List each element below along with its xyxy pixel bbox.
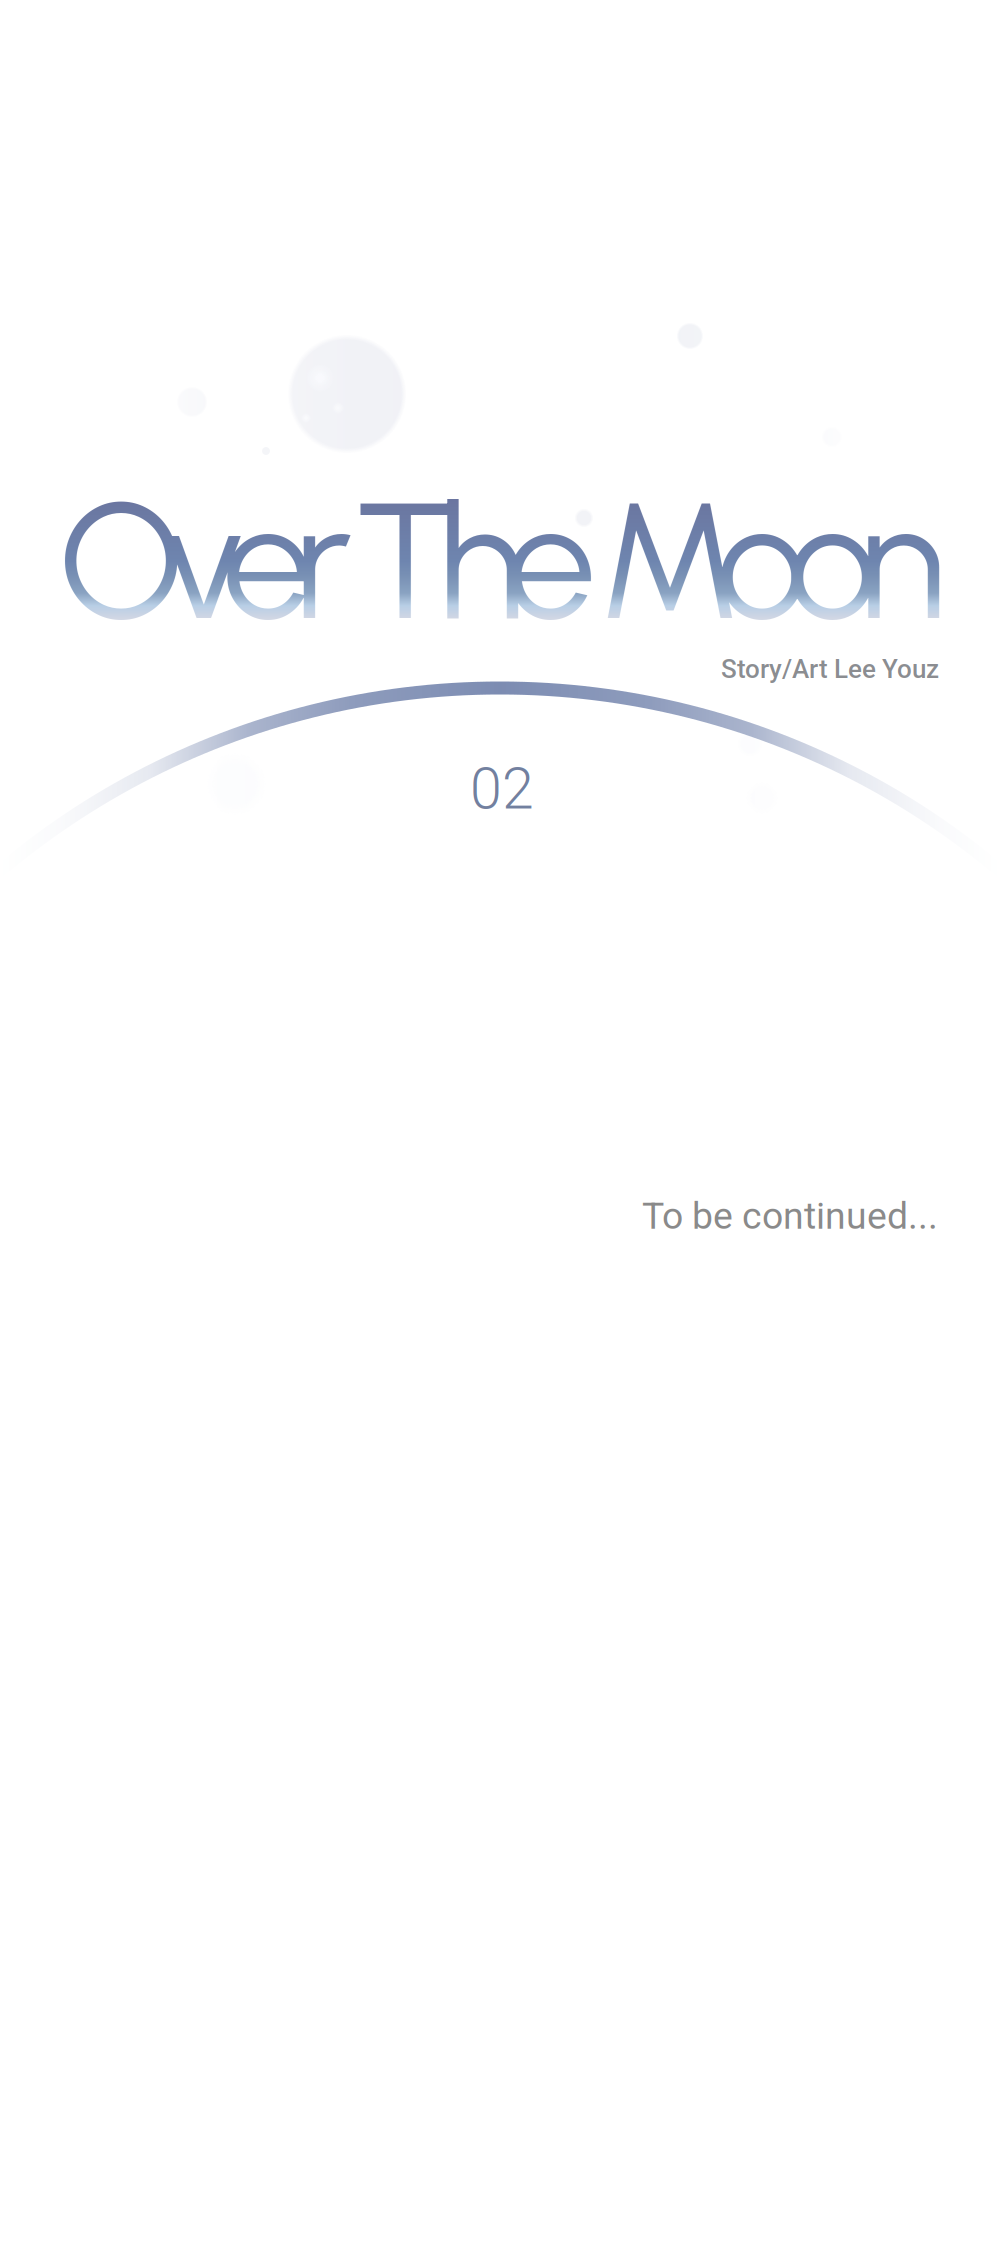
staticText: 02 (470, 755, 534, 823)
staticText: Story/Art Lee Youz (721, 654, 939, 684)
staticText: To be continued... (642, 1194, 938, 1238)
